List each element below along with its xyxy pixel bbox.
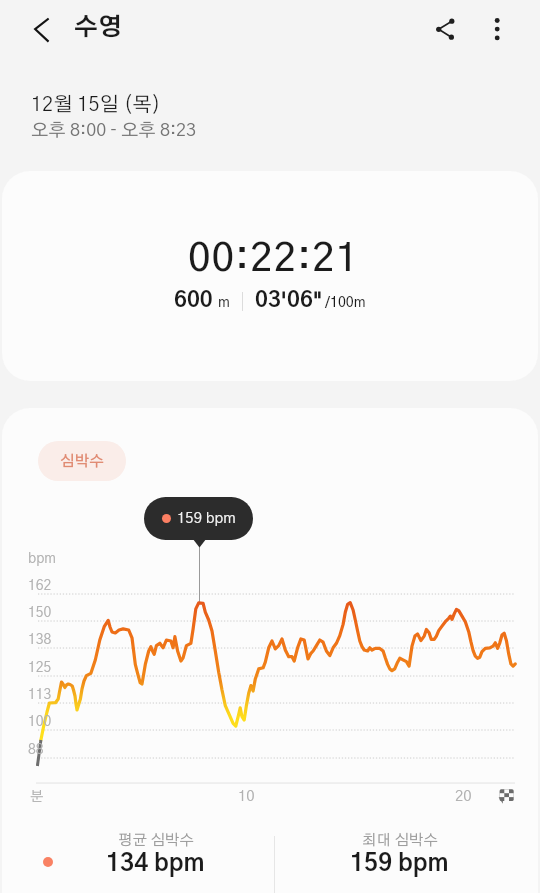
staticText: 00:22:21: [188, 239, 360, 279]
staticText: 평균 심박수: [118, 833, 194, 848]
staticText: /100m: [325, 296, 366, 310]
staticText: 600: [174, 289, 213, 311]
button[interactable]: Back: [20, 8, 64, 52]
button[interactable]: Share: [423, 7, 467, 51]
staticText: 100: [28, 715, 52, 729]
staticText: m: [218, 296, 230, 310]
staticText: 88: [28, 743, 44, 757]
staticText: 10: [238, 789, 255, 804]
staticText: 03: [255, 289, 281, 311]
button[interactable]: More options: [475, 7, 519, 51]
staticText: 분: [30, 790, 44, 804]
staticText: 12월 15일 (목): [31, 95, 161, 115]
staticText: 125: [28, 661, 52, 675]
button[interactable]: 심박수: [38, 441, 126, 481]
staticText: 150: [28, 606, 52, 620]
staticText: 06: [287, 289, 313, 311]
button[interactable]: 평균 심박수: [65, 833, 245, 876]
staticText: 수영: [74, 16, 122, 40]
staticText: 159 bpm: [177, 511, 236, 526]
staticText: 113: [28, 688, 52, 702]
staticText: 134 bpm: [106, 852, 205, 876]
staticText: 159 bpm: [350, 852, 449, 876]
staticText: 오후 8:00 ‐ 오후 8:23: [31, 122, 197, 140]
button[interactable]: 최대 심박수: [309, 833, 489, 876]
staticText: 138: [28, 633, 52, 647]
staticText: 심박수: [60, 454, 104, 469]
button[interactable]: 00:22:21: [2, 171, 538, 381]
staticText: 162: [28, 579, 52, 593]
staticText: 최대 심박수: [362, 833, 438, 848]
staticText: bpm: [28, 552, 56, 566]
staticText: 20: [455, 789, 472, 804]
